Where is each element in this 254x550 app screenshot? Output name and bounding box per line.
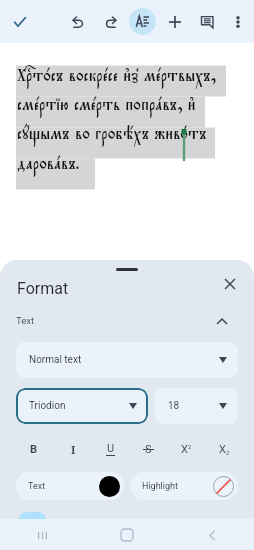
button[interactable]: Format bbox=[129, 8, 156, 35]
staticText: Normal text bbox=[29, 354, 82, 366]
staticText: X bbox=[181, 443, 188, 456]
button[interactable]: Normal text bbox=[16, 342, 238, 378]
staticText: 2 bbox=[188, 443, 192, 450]
staticText: U bbox=[107, 442, 115, 455]
button[interactable]: Comments bbox=[194, 9, 220, 35]
button[interactable]: Strikethrough bbox=[133, 436, 163, 462]
button[interactable]: Redo bbox=[98, 9, 124, 35]
staticText: Format bbox=[17, 279, 69, 298]
staticText: сꙋ́щымъ во гробѣ́хъ живо́тъ bbox=[17, 120, 207, 148]
button[interactable]: Back bbox=[197, 520, 227, 550]
staticText: X bbox=[219, 443, 226, 456]
staticText: 2 bbox=[226, 449, 230, 456]
staticText: 18 bbox=[168, 400, 180, 412]
button[interactable]: Add bbox=[162, 9, 188, 35]
staticText: S bbox=[145, 443, 152, 456]
button[interactable]: Text bbox=[0, 309, 254, 334]
staticText: дарова́въ. bbox=[17, 150, 79, 178]
staticText: Хрⷭ҇то́съ воскре́се и҆з̾ ме́ртвыхъ, bbox=[17, 62, 216, 90]
staticText: Triodion bbox=[29, 400, 66, 412]
staticText: Text bbox=[28, 481, 46, 492]
button[interactable]: Close bbox=[218, 272, 242, 296]
staticText: сме́ртїю сме́рть попра́въ, и҆ bbox=[17, 91, 196, 119]
staticText: B bbox=[30, 443, 38, 456]
button[interactable]: Underline bbox=[95, 436, 125, 462]
button[interactable]: Home bbox=[112, 520, 142, 550]
button[interactable]: Done bbox=[7, 9, 33, 35]
button[interactable]: Highlight bbox=[130, 472, 238, 500]
button[interactable]: Subscript bbox=[209, 436, 239, 462]
staticText: Highlight bbox=[142, 481, 178, 492]
button[interactable]: Italic bbox=[58, 436, 88, 462]
button[interactable]: Recents bbox=[27, 520, 57, 550]
button[interactable]: Triodion bbox=[16, 388, 148, 424]
button[interactable]: 18 bbox=[155, 388, 238, 424]
button[interactable]: Undo bbox=[65, 9, 91, 35]
staticText: I bbox=[71, 442, 76, 457]
button[interactable]: Bold bbox=[19, 436, 49, 462]
button[interactable]: More options bbox=[225, 9, 251, 35]
button[interactable]: Text bbox=[16, 472, 124, 500]
staticText: Text bbox=[16, 315, 35, 326]
button[interactable]: Superscript bbox=[171, 436, 201, 462]
